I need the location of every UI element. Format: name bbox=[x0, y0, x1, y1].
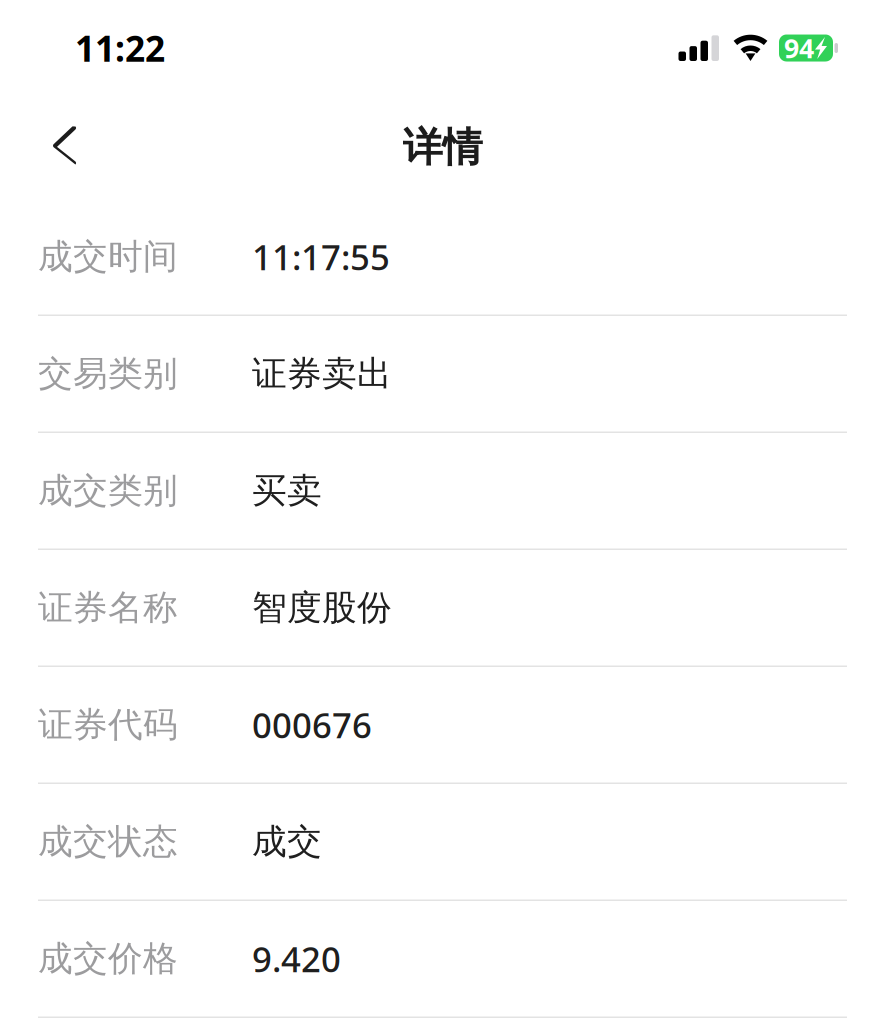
staticText: 成交类别 bbox=[38, 469, 178, 513]
staticText: 成交价格 bbox=[38, 937, 178, 981]
staticText: 94 bbox=[784, 30, 814, 66]
staticText: 证券名称 bbox=[38, 586, 178, 630]
staticText: 成交 bbox=[252, 820, 322, 864]
button[interactable]: Back bbox=[29, 108, 100, 187]
staticText: 成交时间 bbox=[38, 235, 178, 279]
staticText: 详情 bbox=[402, 122, 482, 173]
staticText: 买卖 bbox=[252, 469, 322, 513]
staticText: 证券代码 bbox=[38, 703, 178, 747]
staticText: 交易类别 bbox=[38, 352, 178, 396]
staticText: 11:17:55 bbox=[252, 233, 390, 280]
staticText: 11:22 bbox=[75, 24, 165, 72]
staticText: 000676 bbox=[252, 701, 372, 748]
staticText: 证券卖出 bbox=[252, 352, 392, 396]
staticText: 成交状态 bbox=[38, 820, 178, 864]
staticText: 9.420 bbox=[252, 935, 341, 982]
staticText: 智度股份 bbox=[252, 586, 392, 630]
